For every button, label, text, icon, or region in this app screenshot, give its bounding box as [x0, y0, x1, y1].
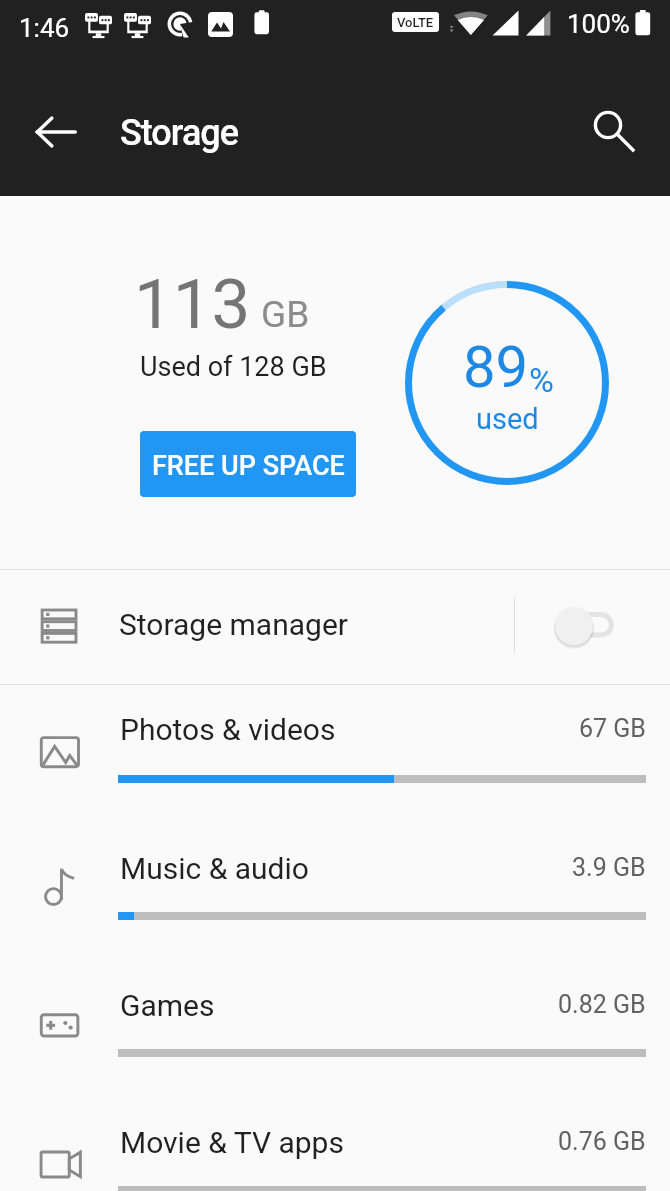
staticText: 1:46: [19, 13, 70, 43]
staticText: 0.82 GB: [558, 990, 646, 1019]
staticText: 100%: [567, 9, 630, 39]
button[interactable]: Photos & videos: [0, 685, 670, 822]
staticText: Games: [120, 988, 215, 1023]
button[interactable]: Movie & TV apps: [0, 1096, 670, 1191]
staticText: 0.76 GB: [558, 1127, 646, 1156]
button[interactable]: FREE UP SPACE: [140, 431, 356, 497]
button[interactable]: Games: [0, 959, 670, 1096]
button[interactable]: Storage manager toggle: [530, 570, 670, 684]
button[interactable]: Search: [584, 102, 640, 158]
staticText: VoLTE: [397, 15, 434, 30]
staticText: used: [476, 402, 539, 436]
staticText: Movie & TV apps: [120, 1125, 344, 1160]
staticText: GB: [261, 293, 310, 336]
button[interactable]: Back: [13, 96, 85, 168]
staticText: Storage: [120, 112, 238, 154]
staticText: %: [529, 360, 554, 400]
staticText: Photos & videos: [120, 712, 336, 747]
staticText: 89: [463, 333, 529, 401]
button[interactable]: Storage manager: [0, 570, 670, 684]
staticText: FREE UP SPACE: [152, 450, 345, 482]
staticText: Music & audio: [120, 851, 309, 886]
staticText: 3.9 GB: [572, 853, 646, 882]
button[interactable]: Music & audio: [0, 822, 670, 959]
staticText: 113: [134, 264, 251, 345]
staticText: Storage manager: [119, 607, 348, 642]
staticText: Used of 128 GB: [140, 351, 327, 383]
staticText: 67 GB: [579, 714, 646, 743]
